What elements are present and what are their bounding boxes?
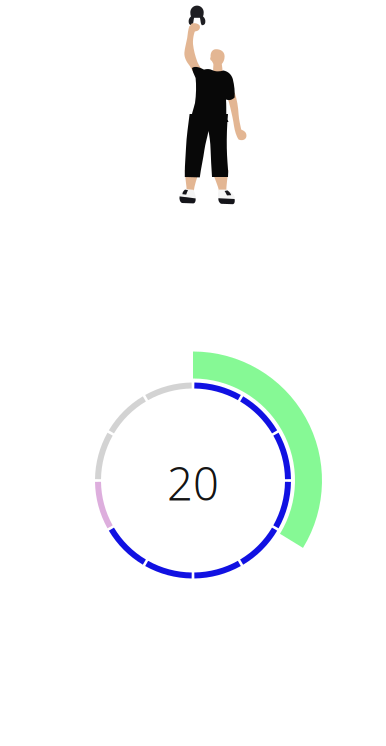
staticText: 20	[167, 453, 219, 513]
